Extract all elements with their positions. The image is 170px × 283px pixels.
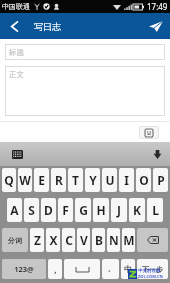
button[interactable]: M: [122, 228, 135, 252]
button[interactable]: T: [68, 168, 83, 192]
button[interactable]: Insert emoji: [139, 126, 159, 139]
staticText: A: [10, 202, 19, 218]
staticText: 中: [124, 264, 132, 274]
staticText: 正文: [9, 70, 24, 79]
staticText: B: [95, 232, 103, 248]
button[interactable]: 123@: [2, 259, 46, 279]
staticText: 中国联通: [2, 2, 30, 11]
staticText: 。: [108, 265, 114, 273]
staticText: 中关村在线: [138, 268, 161, 274]
button[interactable]: W: [18, 168, 32, 192]
staticText: 分词: [8, 236, 22, 245]
button[interactable]: J: [111, 198, 127, 222]
staticText: 17:49: [147, 1, 168, 12]
staticText: X: [49, 232, 58, 248]
staticText: W: [19, 172, 31, 188]
button[interactable]: I: [119, 168, 134, 192]
staticText: Q: [4, 172, 14, 188]
button[interactable]: A: [7, 198, 22, 222]
staticText: Z: [34, 232, 41, 248]
button[interactable]: 标题: [5, 44, 165, 60]
staticText: V: [80, 232, 88, 248]
staticText: E: [38, 172, 45, 188]
staticText: C: [65, 232, 73, 248]
button[interactable]: N: [107, 228, 120, 252]
staticText: ZOL.COM.CN: [138, 274, 163, 279]
staticText: G: [79, 202, 88, 218]
button[interactable]: F: [58, 198, 73, 222]
button[interactable]: C: [62, 228, 75, 252]
button[interactable]: U: [102, 168, 117, 192]
button[interactable]: ,: [48, 259, 62, 279]
button[interactable]: Send: [142, 13, 170, 39]
button[interactable]: P: [153, 168, 168, 192]
button[interactable]: K: [129, 198, 145, 222]
staticText: 下一步: [142, 265, 163, 274]
staticText: Y: [89, 172, 97, 188]
staticText: F: [62, 202, 69, 218]
button[interactable]: 分词: [2, 228, 28, 252]
button[interactable]: 正文: [5, 66, 165, 116]
staticText: L: [152, 202, 159, 218]
button[interactable]: X: [46, 228, 60, 252]
button[interactable]: Hide keyboard: [150, 147, 164, 161]
staticText: D: [44, 202, 53, 218]
staticText: J: [117, 202, 121, 218]
staticText: K: [133, 202, 141, 218]
button[interactable]: O: [136, 168, 151, 192]
button[interactable]: 。: [102, 259, 119, 279]
staticText: 写日志: [34, 21, 61, 32]
button[interactable]: B: [92, 228, 105, 252]
button[interactable]: R: [51, 168, 66, 192]
button[interactable]: 中: [121, 259, 135, 279]
button[interactable]: H: [93, 198, 109, 222]
button[interactable]: Q: [2, 168, 16, 192]
staticText: R: [55, 172, 63, 188]
staticText: T: [72, 172, 79, 188]
staticText: 123@: [14, 264, 34, 274]
button[interactable]: S: [24, 198, 39, 222]
button[interactable]: D: [41, 198, 56, 222]
staticText: H: [96, 202, 106, 218]
staticText: U: [105, 172, 115, 188]
staticText: M: [123, 232, 135, 248]
staticText: I: [124, 172, 129, 188]
staticText: P: [157, 172, 165, 188]
button[interactable]: L: [147, 198, 163, 222]
button[interactable]: Back: [0, 13, 28, 39]
staticText: O: [139, 172, 149, 188]
button[interactable]: G: [75, 198, 91, 222]
button[interactable]: 下一步: [137, 259, 168, 279]
button[interactable]: E: [34, 168, 49, 192]
button[interactable]: V: [77, 228, 90, 252]
staticText: N: [109, 232, 119, 248]
staticText: S: [28, 202, 35, 218]
button[interactable]: Backspace: [137, 228, 168, 252]
staticText: ,: [54, 264, 57, 275]
button[interactable]: Space: [64, 259, 100, 279]
button[interactable]: Y: [85, 168, 100, 192]
button[interactable]: Switch keyboard: [10, 147, 24, 161]
button[interactable]: Z: [30, 228, 44, 252]
staticText: 标题: [9, 48, 24, 57]
